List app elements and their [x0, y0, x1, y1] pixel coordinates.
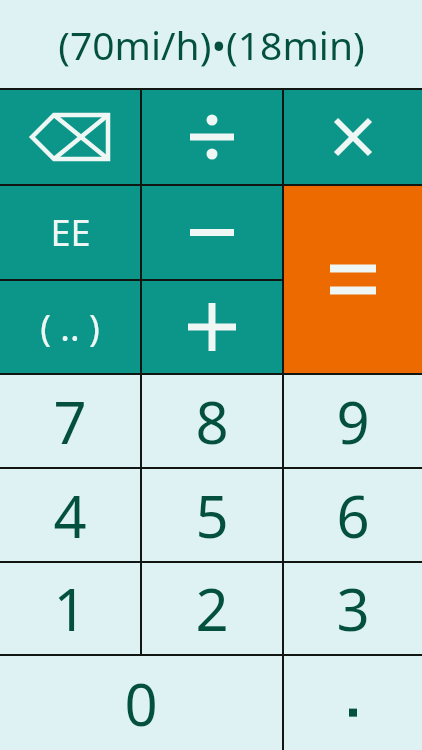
button[interactable]: Backspace: [0, 90, 140, 184]
staticText: 0: [124, 664, 158, 743]
staticText: 8: [195, 382, 229, 461]
button[interactable]: Equals: [284, 186, 422, 373]
staticText: 1: [53, 569, 87, 648]
button[interactable]: Minus: [142, 186, 282, 279]
button[interactable]: 6: [284, 469, 422, 561]
button[interactable]: 1: [0, 563, 140, 654]
button[interactable]: ( .. ): [0, 281, 140, 373]
button[interactable]: 7: [0, 375, 140, 467]
staticText: EE: [50, 208, 91, 257]
staticText: 6: [336, 476, 370, 555]
staticText: 9: [336, 382, 370, 461]
staticText: 3: [336, 569, 370, 648]
button[interactable]: 2: [142, 563, 282, 654]
button[interactable]: 5: [142, 469, 282, 561]
staticText: 2: [195, 569, 229, 648]
button[interactable]: Decimal point: [284, 656, 422, 750]
button[interactable]: 9: [284, 375, 422, 467]
button[interactable]: 3: [284, 563, 422, 654]
button[interactable]: Plus: [142, 281, 282, 373]
button[interactable]: 0: [0, 656, 282, 750]
staticText: 4: [53, 476, 87, 555]
button[interactable]: 4: [0, 469, 140, 561]
staticText: 5: [195, 476, 229, 555]
staticText: (70mi/h)•(18min): [58, 18, 365, 71]
button[interactable]: 8: [142, 375, 282, 467]
button[interactable]: EE: [0, 186, 140, 279]
button[interactable]: Divide: [142, 90, 282, 184]
staticText: 7: [53, 382, 87, 461]
button[interactable]: Multiply: [284, 90, 422, 184]
staticText: ( .. ): [40, 303, 100, 352]
